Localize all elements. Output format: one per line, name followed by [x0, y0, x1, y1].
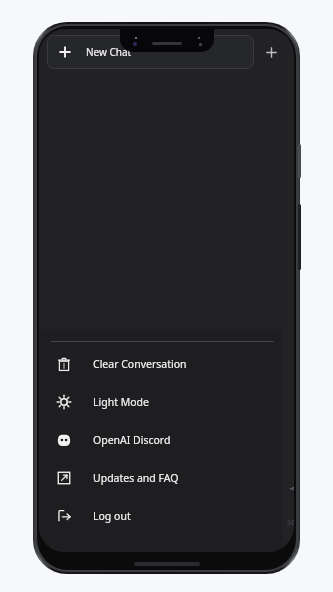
staticText: Clear Conversation	[93, 357, 187, 371]
button[interactable]: Log out	[39, 497, 282, 535]
button[interactable]: Updates and FAQ	[39, 459, 282, 497]
staticText: Log out	[93, 509, 131, 523]
button[interactable]: Send	[285, 477, 294, 501]
button[interactable]: New chat	[254, 35, 288, 69]
staticText: se of the	[287, 516, 294, 527]
staticText: Updates and FAQ	[93, 471, 179, 485]
staticText: OpenAI Discord	[93, 433, 171, 447]
button[interactable]: OpenAI Discord	[39, 421, 282, 459]
staticText: New Chat	[86, 45, 132, 59]
button[interactable]: Light Mode	[39, 383, 282, 421]
button[interactable]: Clear Conversation	[39, 345, 282, 383]
button[interactable]: New Chat	[47, 35, 254, 69]
staticText: Light Mode	[93, 395, 149, 409]
